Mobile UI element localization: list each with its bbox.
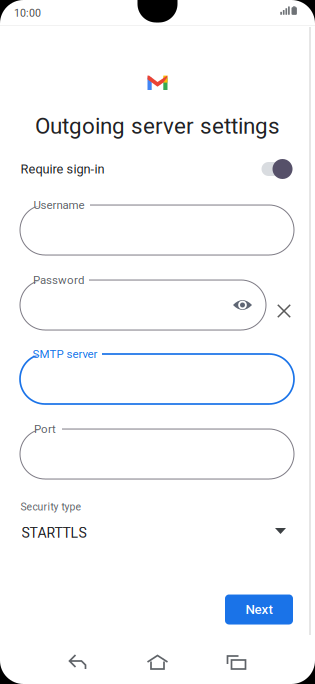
- staticText: SMTP server: [32, 347, 97, 361]
- staticText: STARTTLS: [21, 525, 86, 541]
- staticText: Require sign-in: [20, 161, 104, 176]
- staticText: Username: [33, 198, 84, 212]
- button[interactable]: Clear password: [276, 303, 292, 319]
- button[interactable]: Recent apps: [225, 651, 247, 673]
- staticText: Outgoing server settings: [35, 113, 280, 139]
- staticText: Security type: [20, 501, 81, 513]
- staticText: Password: [33, 273, 84, 287]
- button[interactable]: Require sign-in: [257, 158, 292, 180]
- button[interactable]: Back: [67, 651, 89, 673]
- staticText: Next: [245, 602, 272, 617]
- button[interactable]: Next: [225, 594, 293, 624]
- button[interactable]: Home: [146, 651, 168, 673]
- staticText: 10:00: [14, 7, 41, 19]
- staticText: Port: [34, 422, 56, 436]
